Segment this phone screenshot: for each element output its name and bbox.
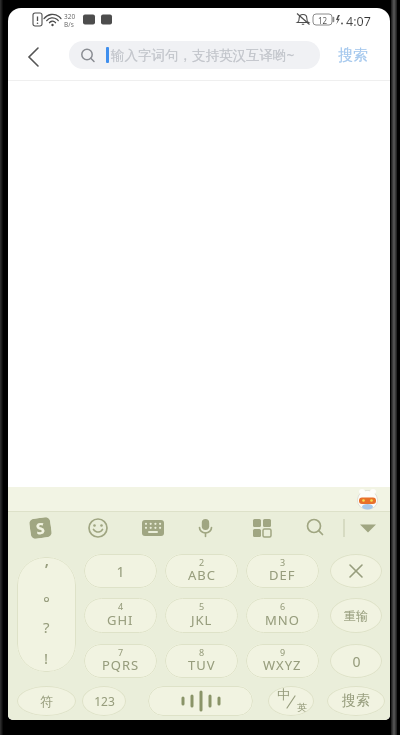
- staticText: 6: [280, 600, 286, 612]
- button[interactable]: 8: [165, 644, 238, 678]
- button[interactable]: 搜索: [327, 686, 385, 716]
- staticText: 123: [94, 693, 115, 709]
- staticText: 输入字词句，支持英汉互译哟~: [111, 46, 295, 64]
- button[interactable]: 2: [165, 554, 238, 588]
- button[interactable]: 4: [84, 598, 157, 633]
- staticText: DEF: [269, 566, 296, 584]
- staticText: JKL: [191, 611, 213, 629]
- staticText: 4: [118, 600, 124, 612]
- staticText: MNO: [265, 611, 300, 629]
- staticText: 1: [116, 562, 125, 581]
- staticText: 搜索: [342, 692, 370, 710]
- staticText: WXYZ: [263, 656, 302, 674]
- button[interactable]: 重输: [330, 598, 382, 633]
- button[interactable]: 5: [165, 598, 238, 633]
- staticText: S: [35, 517, 46, 539]
- button[interactable]: 符: [17, 686, 76, 716]
- staticText: !: [44, 648, 49, 668]
- button[interactable]: 中: [268, 686, 314, 716]
- staticText: ?: [43, 617, 50, 637]
- staticText: ABC: [188, 566, 216, 584]
- staticText: 9: [280, 646, 286, 658]
- staticText: 重输: [344, 608, 368, 623]
- staticText: 0: [352, 652, 361, 671]
- staticText: GHI: [107, 611, 134, 629]
- button[interactable]: 1: [84, 554, 157, 588]
- staticText: 2: [199, 556, 205, 568]
- staticText: 搜索: [338, 46, 368, 65]
- staticText: 5: [199, 600, 205, 612]
- staticText: ’: [45, 558, 49, 581]
- staticText: 7: [118, 646, 124, 658]
- button[interactable]: 123: [82, 686, 126, 716]
- button[interactable]: 搜索: [328, 41, 378, 69]
- staticText: 英: [297, 701, 307, 714]
- button[interactable]: S: [29, 517, 52, 539]
- staticText: PQRS: [102, 656, 140, 674]
- button[interactable]: 7: [84, 644, 157, 678]
- staticText: 4:07: [346, 13, 371, 30]
- button[interactable]: 0: [330, 644, 382, 678]
- staticText: 3: [280, 556, 286, 568]
- staticText: 符: [40, 693, 53, 709]
- staticText: 8: [199, 646, 205, 658]
- button[interactable]: [18, 42, 48, 72]
- button[interactable]: 6: [246, 598, 319, 633]
- staticText: 中: [277, 686, 290, 702]
- button[interactable]: 输入字词句，支持英汉互译哟~: [69, 41, 320, 69]
- staticText: TUV: [188, 656, 216, 674]
- button[interactable]: 9: [246, 644, 319, 678]
- button[interactable]: ’: [17, 557, 76, 672]
- staticText: 12: [318, 15, 328, 26]
- button[interactable]: [148, 686, 253, 716]
- staticText: 320 B/s: [64, 12, 76, 29]
- button[interactable]: [330, 554, 382, 588]
- button[interactable]: 3: [246, 554, 319, 588]
